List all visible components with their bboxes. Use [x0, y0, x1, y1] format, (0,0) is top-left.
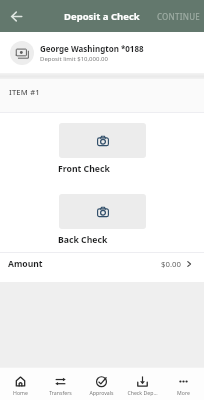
button[interactable]: Home: [0, 369, 40, 400]
button[interactable]: Front Check: [59, 123, 146, 158]
staticText: Deposit limit $10,000.00: [40, 55, 108, 63]
button[interactable]: Approvals: [81, 369, 122, 400]
button[interactable]: More: [163, 369, 204, 400]
staticText: Home: [13, 389, 28, 396]
staticText: Transfers: [49, 389, 72, 396]
button[interactable]: Transfers: [40, 369, 81, 400]
button[interactable]: Amount: [0, 253, 204, 282]
staticText: Check Dep...: [127, 389, 158, 396]
staticText: Deposit a Check: [64, 10, 140, 23]
staticText: CONTINUE: [157, 11, 200, 22]
staticText: $0.00: [161, 259, 181, 270]
button[interactable]: Back Check: [59, 194, 146, 229]
staticText: George Washington *0188: [40, 43, 144, 54]
staticText: ITEM #1: [9, 87, 40, 97]
button[interactable]: George Washington *0188: [0, 32, 204, 73]
staticText: Amount: [8, 258, 43, 270]
staticText: Back Check: [58, 234, 108, 246]
button[interactable]: Check Dep...: [122, 369, 163, 400]
button[interactable]: CONTINUE: [153, 5, 204, 28]
staticText: More: [177, 389, 190, 396]
staticText: Approvals: [89, 389, 114, 396]
button[interactable]: Back: [4, 4, 28, 28]
staticText: Front Check: [58, 163, 110, 175]
